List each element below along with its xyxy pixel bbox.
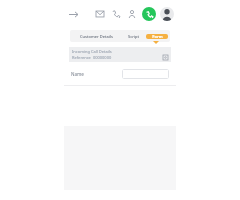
staticText: Form bbox=[152, 34, 163, 39]
button[interactable]: Profile bbox=[160, 7, 174, 21]
button[interactable]: Copy details bbox=[162, 54, 168, 60]
staticText: Reference 00000000 bbox=[72, 55, 112, 60]
staticText: Script bbox=[128, 34, 139, 39]
staticText: Incoming Call Details bbox=[72, 49, 112, 54]
button[interactable]: Start call bbox=[142, 7, 156, 21]
button[interactable]: Script bbox=[122, 34, 144, 39]
staticText: Name bbox=[71, 71, 84, 77]
button[interactable]: Forward bbox=[66, 7, 80, 21]
staticText: Customer Details bbox=[80, 34, 113, 39]
button[interactable]: Name input bbox=[122, 69, 169, 79]
button[interactable]: Email bbox=[94, 8, 106, 20]
button[interactable]: Customer Details bbox=[70, 34, 122, 39]
button[interactable]: Contacts bbox=[126, 8, 138, 20]
button[interactable]: Call bbox=[110, 8, 122, 20]
button[interactable]: Form bbox=[146, 34, 168, 39]
